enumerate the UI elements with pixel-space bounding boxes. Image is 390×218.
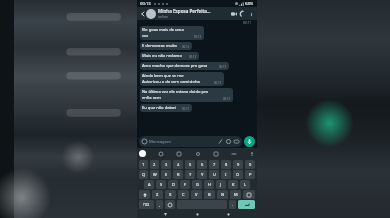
button[interactable]: Ele goza mais de uma [140,26,204,40]
button[interactable]: Google [139,150,146,157]
button[interactable]: , [156,200,163,209]
button[interactable]: Eu que não deixei [140,104,192,112]
button[interactable]: Z [152,190,163,199]
staticText: D [172,182,175,187]
staticText: Ainda bem que vc me [142,73,184,79]
button[interactable]: . [229,200,236,209]
button[interactable]: C [178,190,189,199]
button[interactable]: 7 [209,160,219,169]
button[interactable]: 5 [185,160,195,169]
staticText: 4 [177,162,180,167]
button[interactable]: Ainda bem que vc me [140,72,224,86]
staticText: enfia sem [142,95,161,101]
button[interactable]: Voice message [244,136,255,147]
button[interactable]: A [144,180,154,189]
button[interactable]: I [221,170,231,179]
button[interactable]: E demorasa muito [140,42,192,50]
staticText: 1 [142,162,145,167]
staticText: N [221,192,225,197]
button[interactable]: V [191,190,202,199]
button[interactable]: ?123 [139,200,154,209]
button[interactable]: Recents [225,211,232,218]
staticText: 2 [153,162,156,167]
button[interactable]: shift [139,190,150,199]
button[interactable]: Call [238,9,247,18]
button[interactable]: M [230,190,241,199]
staticText: R [177,172,180,177]
button[interactable]: X [165,190,176,199]
button[interactable]: U [209,170,219,179]
staticText: online [158,14,168,19]
button[interactable]: translate [213,151,219,157]
staticText: 00:13 [223,97,231,101]
button[interactable]: K [228,180,238,189]
staticText: I [225,172,227,177]
button[interactable]: 3 [161,160,171,169]
staticText: F [184,182,187,187]
button[interactable]: Video call [229,9,238,18]
staticText: Na última vez ele estava doido pra [142,89,208,95]
button[interactable]: O [233,170,243,179]
button[interactable]: 1 [139,160,148,169]
button[interactable]: del [243,190,255,199]
button[interactable]: B [204,190,215,199]
staticText: S [160,182,163,187]
staticText: Z [156,192,159,197]
staticText: M [234,192,238,197]
button[interactable]: J [216,180,226,189]
button[interactable]: more [231,151,237,157]
button[interactable]: emoji [165,200,175,209]
staticText: Eu que não deixei [142,105,176,111]
button[interactable]: D [168,180,178,189]
staticText: C [182,192,185,197]
button[interactable]: 6 [197,160,207,169]
button[interactable]: mic [249,151,255,157]
staticText: G [196,182,199,187]
button[interactable]: Y [197,170,207,179]
button[interactable]: T [185,170,195,179]
staticText: . [232,202,234,207]
button[interactable]: F [180,180,190,189]
staticText: Minha Esposa Perfeita... [158,8,211,14]
button[interactable]: clipboard [195,151,201,157]
button[interactable]: S [156,180,166,189]
button[interactable]: Q [139,170,148,179]
button[interactable]: 8 [221,160,231,169]
button[interactable]: 9 [233,160,243,169]
staticText: W [153,172,157,177]
staticText: vez [142,33,149,39]
button[interactable]: 2 [150,160,159,169]
button[interactable]: GIF [158,151,164,157]
button[interactable]: 4 [173,160,183,169]
button[interactable]: Enter [238,200,255,209]
staticText: 00:13 [182,45,190,49]
button[interactable]: H [204,180,214,189]
staticText: X [169,192,172,197]
button[interactable]: Home [194,211,201,218]
button[interactable]: Mais eu não reclamo [140,52,199,60]
staticText: Ele goza mais de uma [142,27,184,33]
button[interactable]: More options [247,10,255,18]
button[interactable]: G [192,180,202,189]
button[interactable]: Back [139,10,146,17]
staticText: U [213,172,216,177]
button[interactable]: Mensagem [139,136,242,147]
button[interactable]: R [173,170,183,179]
button[interactable]: N [217,190,228,199]
staticText: Autorizou a da sem camisinha [142,79,200,85]
button[interactable]: 0 [245,160,255,169]
button[interactable]: Back [139,7,255,20]
button[interactable]: Back [162,211,169,218]
button[interactable]: E [161,170,171,179]
staticText: 68% [245,1,254,7]
staticText: 00:11 [243,21,252,25]
button[interactable]: Amo macho que demora pra gosa [140,62,229,70]
button[interactable]: sticker [176,151,182,157]
staticText: 00:13 [194,35,202,39]
button[interactable]: W [150,170,159,179]
button[interactable]: Na última vez ele estava doido pra [140,88,233,102]
staticText: J [220,182,222,187]
button[interactable]: P [245,170,255,179]
button[interactable]: L [240,180,250,189]
